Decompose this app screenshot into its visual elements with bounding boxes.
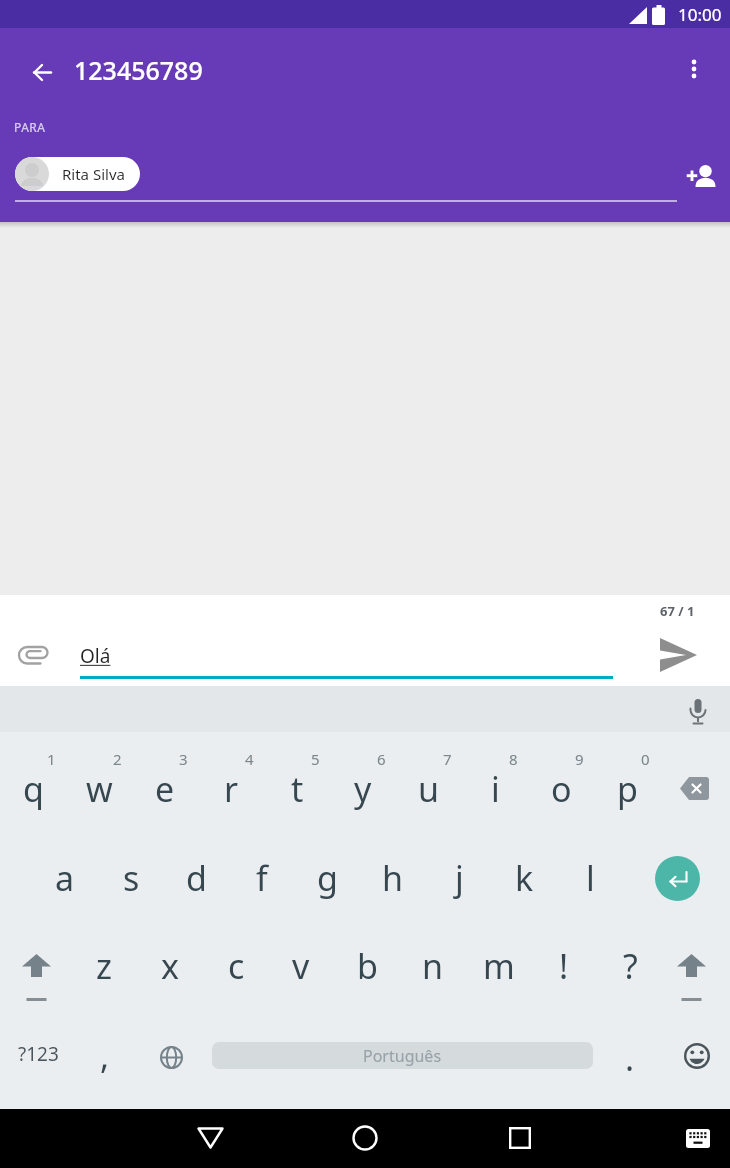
staticText: v (292, 943, 310, 989)
button[interactable] (337, 1110, 393, 1166)
staticText: 1 (47, 749, 56, 769)
button[interactable] (20, 50, 64, 94)
staticText: Português (363, 1045, 442, 1067)
staticText: d (186, 855, 207, 901)
staticText: o (551, 766, 572, 812)
button[interactable]: g (294, 848, 360, 908)
staticText: 67 / 1 (660, 602, 695, 620)
button[interactable]: i (462, 759, 528, 819)
button[interactable]: p (594, 759, 660, 819)
staticText: f (256, 855, 268, 901)
staticText: 6 (377, 749, 386, 769)
button[interactable]: . (597, 1028, 663, 1088)
staticText: 0 (641, 749, 650, 769)
staticText: 7 (443, 749, 452, 769)
button[interactable] (663, 940, 719, 1004)
staticText: p (617, 766, 638, 812)
button[interactable] (492, 1110, 548, 1166)
button[interactable] (8, 635, 58, 675)
staticText: 9 (575, 749, 584, 769)
button[interactable] (669, 1028, 725, 1084)
staticText: n (422, 943, 444, 989)
staticText: 4 (245, 749, 254, 769)
staticText: Rita Silva (62, 164, 125, 184)
staticText: 5 (311, 749, 320, 769)
button[interactable]: ? (597, 936, 663, 996)
staticText: ! (559, 943, 569, 989)
button[interactable] (677, 154, 721, 194)
staticText: 2 (113, 749, 122, 769)
button[interactable]: w (66, 759, 132, 819)
button[interactable]: Português (212, 1042, 593, 1069)
staticText: ? (623, 943, 638, 989)
staticText: Olá (80, 643, 111, 669)
staticText: , (100, 1033, 110, 1079)
staticText: 10:00 (678, 3, 722, 26)
staticText: ?123 (18, 1041, 59, 1067)
staticText: e (155, 766, 175, 812)
button[interactable]: u (396, 759, 462, 819)
button[interactable]: f (229, 848, 295, 908)
button[interactable] (182, 1110, 238, 1166)
staticText: m (483, 943, 515, 989)
button[interactable]: e (132, 759, 198, 819)
staticText: u (418, 766, 440, 812)
button[interactable]: q (0, 759, 66, 819)
button[interactable]: a (32, 848, 98, 908)
staticText: h (382, 855, 404, 901)
staticText: PARA (14, 119, 46, 135)
button[interactable]: d (163, 848, 229, 908)
staticText: q (23, 766, 44, 812)
button[interactable]: s (98, 848, 164, 908)
button[interactable] (655, 856, 700, 901)
button[interactable]: x (137, 936, 203, 996)
button[interactable]: y (330, 759, 396, 819)
button[interactable]: z (71, 936, 137, 996)
button[interactable]: t (264, 759, 330, 819)
staticText: r (224, 766, 239, 812)
staticText: z (96, 943, 112, 989)
button[interactable]: ?123 (5, 1024, 71, 1084)
button[interactable]: k (491, 848, 557, 908)
staticText: 123456789 (74, 53, 203, 87)
button[interactable] (672, 50, 716, 94)
button[interactable]: b (334, 936, 400, 996)
staticText: i (491, 766, 500, 812)
button[interactable] (8, 940, 64, 1004)
button[interactable]: , (72, 1026, 138, 1086)
button[interactable]: v (268, 936, 334, 996)
staticText: t (291, 766, 304, 812)
button[interactable]: Rita Silva (15, 157, 140, 191)
staticText: a (55, 855, 75, 901)
staticText: 3 (179, 749, 188, 769)
button[interactable] (664, 760, 724, 816)
button[interactable]: ! (531, 936, 597, 996)
button[interactable] (143, 1029, 199, 1085)
button[interactable]: j (426, 848, 492, 908)
button[interactable]: h (360, 848, 426, 908)
button[interactable] (650, 633, 706, 677)
staticText: g (317, 855, 338, 901)
staticText: l (586, 855, 595, 901)
staticText: x (161, 943, 179, 989)
button[interactable]: r (198, 759, 264, 819)
staticText: c (228, 943, 245, 989)
staticText: w (86, 766, 113, 812)
staticText: y (354, 766, 372, 812)
staticText: k (515, 855, 534, 901)
button[interactable]: l (557, 848, 623, 908)
staticText: s (123, 855, 140, 901)
staticText: . (625, 1035, 635, 1081)
button[interactable]: n (400, 936, 466, 996)
button[interactable] (672, 1110, 724, 1166)
button[interactable] (678, 692, 718, 732)
button[interactable]: c (203, 936, 269, 996)
staticText: b (357, 943, 378, 989)
button[interactable]: m (466, 936, 532, 996)
staticText: 8 (509, 749, 518, 769)
staticText: j (455, 855, 464, 901)
button[interactable]: o (528, 759, 594, 819)
